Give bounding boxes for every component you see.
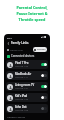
button[interactable]: Toggle device	[41, 74, 47, 77]
button[interactable]: Kid's iPad	[6, 93, 48, 102]
staticText: Living room TV	[15, 83, 35, 87]
staticText: 192.168.1.24	[15, 65, 29, 68]
button[interactable]: Pixel 7 Pro	[6, 60, 48, 69]
staticText: Pixel 7 Pro	[15, 61, 29, 65]
staticText: Parental Control, Pause Internet & Throt…	[16, 5, 48, 22]
button[interactable]: Toggle device	[41, 96, 47, 99]
button[interactable]: Living room TV	[6, 82, 48, 91]
staticText: 192.168.1.42	[15, 98, 29, 101]
staticText: Home Wi-Fi	[10, 48, 23, 51]
button[interactable]: Toggle device	[41, 85, 47, 88]
button[interactable]: Toggle device	[41, 107, 47, 110]
staticText: Kid's iPad	[15, 94, 28, 98]
button[interactable]: Settings	[33, 47, 47, 52]
staticText: Settings	[37, 48, 46, 51]
staticText: Connected devices	[11, 54, 35, 58]
staticText: MacBook Air	[15, 72, 32, 76]
staticText: 9:41	[7, 36, 12, 39]
button[interactable]: Toggle device	[41, 63, 47, 66]
button[interactable]: MacBook Air	[6, 71, 48, 80]
button[interactable]: Back	[6, 41, 11, 46]
staticText: 192.168.1.11	[15, 76, 29, 79]
staticText: Family Links	[11, 41, 29, 45]
button[interactable]: Echo Dot	[6, 104, 48, 113]
staticText: Echo Dot	[15, 105, 27, 109]
staticText: 192.168.1.31	[15, 87, 29, 90]
staticText: Network details	[7, 115, 26, 118]
staticText: 192.168.1.55	[15, 109, 29, 112]
